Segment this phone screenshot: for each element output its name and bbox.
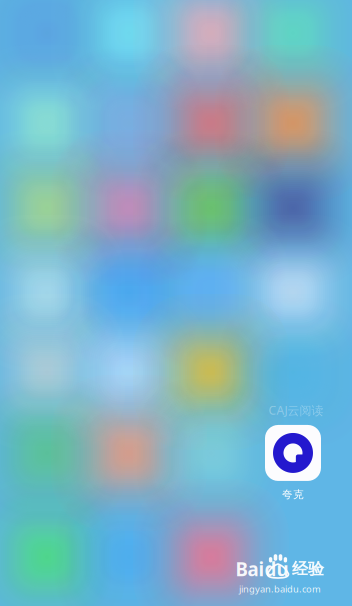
staticText: CAJ云阅读 — [268, 402, 323, 418]
staticText: 经验 — [292, 559, 324, 579]
button[interactable]: 夸克 — [265, 425, 321, 501]
staticText: 夸克 — [282, 488, 304, 501]
staticText: jingyan.baidu.com — [239, 583, 321, 595]
staticText: Baidu — [235, 557, 288, 581]
